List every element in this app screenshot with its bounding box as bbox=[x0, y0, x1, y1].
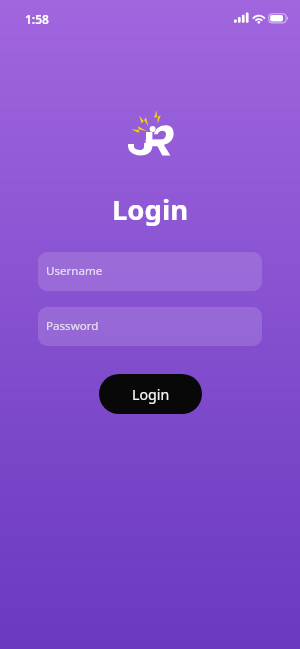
staticText: Login bbox=[132, 385, 170, 404]
staticText: Username bbox=[46, 263, 103, 279]
staticText: 1:58 bbox=[25, 11, 49, 27]
button[interactable]: Password bbox=[38, 307, 262, 346]
staticText: Password bbox=[46, 318, 99, 334]
other: Status icons bbox=[234, 12, 289, 26]
button[interactable]: Login bbox=[99, 374, 202, 414]
staticText: Login bbox=[112, 191, 189, 228]
button[interactable]: Username bbox=[38, 252, 262, 291]
